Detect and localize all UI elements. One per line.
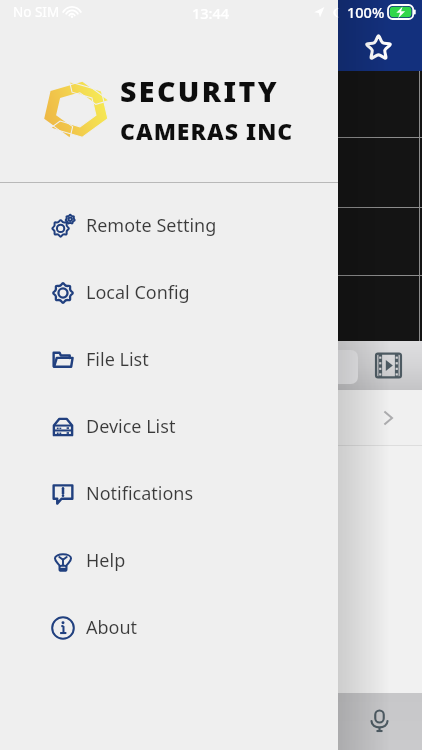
staticText: SECURITY <box>120 72 279 111</box>
button[interactable]: Notifications <box>0 460 338 527</box>
button[interactable]: Remote Setting <box>0 192 338 259</box>
staticText: 13:44 <box>192 3 230 23</box>
button[interactable]: Local Config <box>0 259 338 326</box>
button[interactable]: File List <box>0 326 338 393</box>
button[interactable]: Camera channel 3 <box>0 208 422 275</box>
button[interactable]: Favorite <box>361 30 396 65</box>
button[interactable]: Help <box>0 527 338 594</box>
staticText: About <box>86 615 138 640</box>
staticText: Notifications <box>86 481 194 506</box>
button[interactable]: Talk <box>359 700 399 740</box>
button[interactable]: Camera channel 1 <box>0 71 422 137</box>
button[interactable]: Camera channel 2 <box>0 138 422 207</box>
button[interactable]: Camera channel 4 <box>0 276 422 341</box>
staticText: Device List <box>86 414 176 439</box>
staticText: CAMERAS INC <box>120 115 294 146</box>
staticText: Local Config <box>86 280 190 305</box>
staticText: Help <box>86 548 126 573</box>
button[interactable]: About <box>0 594 338 661</box>
staticText: 100% <box>347 2 385 22</box>
button[interactable]: Playback <box>370 347 406 383</box>
button[interactable]: Device List <box>0 393 338 460</box>
staticText: Remote Setting <box>86 213 217 238</box>
button[interactable]: Snapshot <box>300 350 358 384</box>
staticText: No SIM <box>13 3 60 21</box>
button[interactable]: Expand device list <box>371 401 405 435</box>
staticText: File List <box>86 347 149 372</box>
